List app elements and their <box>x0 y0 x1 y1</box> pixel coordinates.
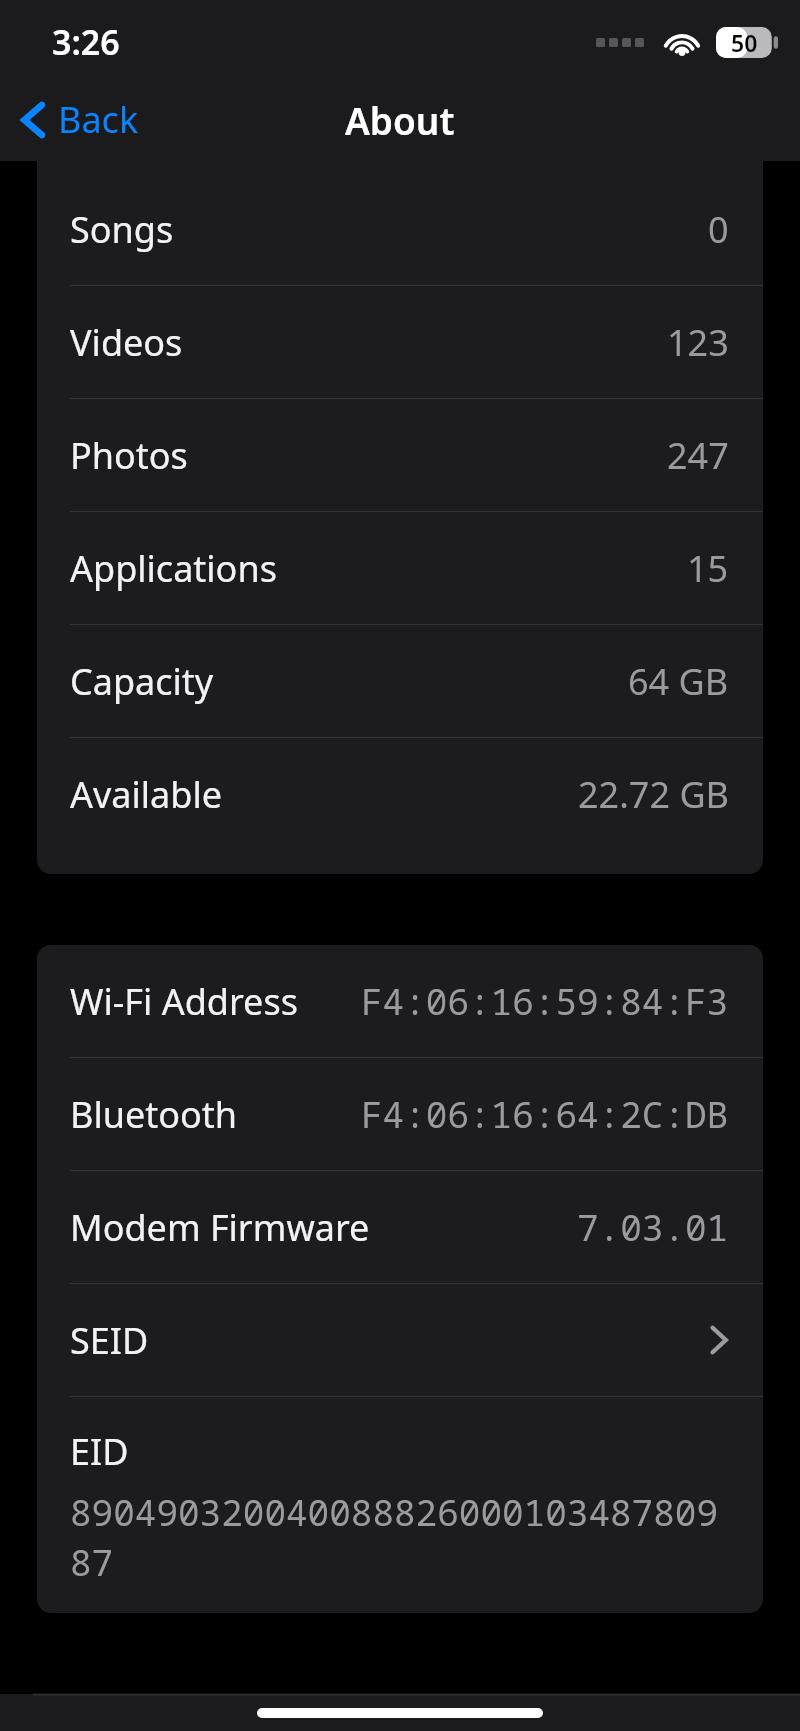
staticText: 64 GB <box>628 657 729 706</box>
button[interactable]: SEID <box>37 1284 763 1397</box>
staticText: 15 <box>687 544 729 593</box>
staticText: Modem Firmware <box>70 1203 370 1252</box>
staticText: F4:06:16:64:2C:DB <box>361 1090 729 1139</box>
staticText: Songs <box>70 205 174 254</box>
staticText: Capacity <box>70 657 214 706</box>
staticText: Photos <box>70 431 188 480</box>
staticText: 7.03.01 <box>577 1203 729 1252</box>
staticText: 3:26 <box>52 19 120 65</box>
staticText: Back <box>58 95 139 144</box>
button[interactable]: Available <box>37 738 763 850</box>
button[interactable]: Wi-Fi Address <box>37 945 763 1058</box>
button[interactable]: Modem Firmware <box>37 1171 763 1284</box>
button[interactable]: Bluetooth <box>37 1058 763 1171</box>
button[interactable]: EID <box>37 1397 763 1613</box>
staticText: 247 <box>667 431 729 480</box>
staticText: F4:06:16:59:84:F3 <box>361 977 729 1026</box>
staticText: 89049032004008882600010348780987 <box>70 1488 729 1587</box>
staticText: Wi-Fi Address <box>70 977 298 1026</box>
button[interactable]: Capacity <box>37 625 763 738</box>
staticText: 123 <box>667 318 729 367</box>
button[interactable]: Photos <box>37 399 763 512</box>
staticText: Available <box>70 770 222 819</box>
staticText: Bluetooth <box>70 1090 238 1139</box>
staticText: 50 <box>731 27 758 58</box>
staticText: EID <box>70 1427 129 1476</box>
staticText: About <box>345 95 455 145</box>
staticText: 0 <box>708 205 729 254</box>
button[interactable]: Videos <box>37 286 763 399</box>
button[interactable]: Songs <box>37 173 763 286</box>
other: Open SEID <box>709 1323 729 1357</box>
button[interactable]: Applications <box>37 512 763 625</box>
staticText: SEID <box>70 1316 149 1365</box>
staticText: Videos <box>70 318 183 367</box>
staticText: 22.72 GB <box>578 770 729 819</box>
button[interactable]: Back <box>0 87 155 152</box>
staticText: Applications <box>70 544 277 593</box>
